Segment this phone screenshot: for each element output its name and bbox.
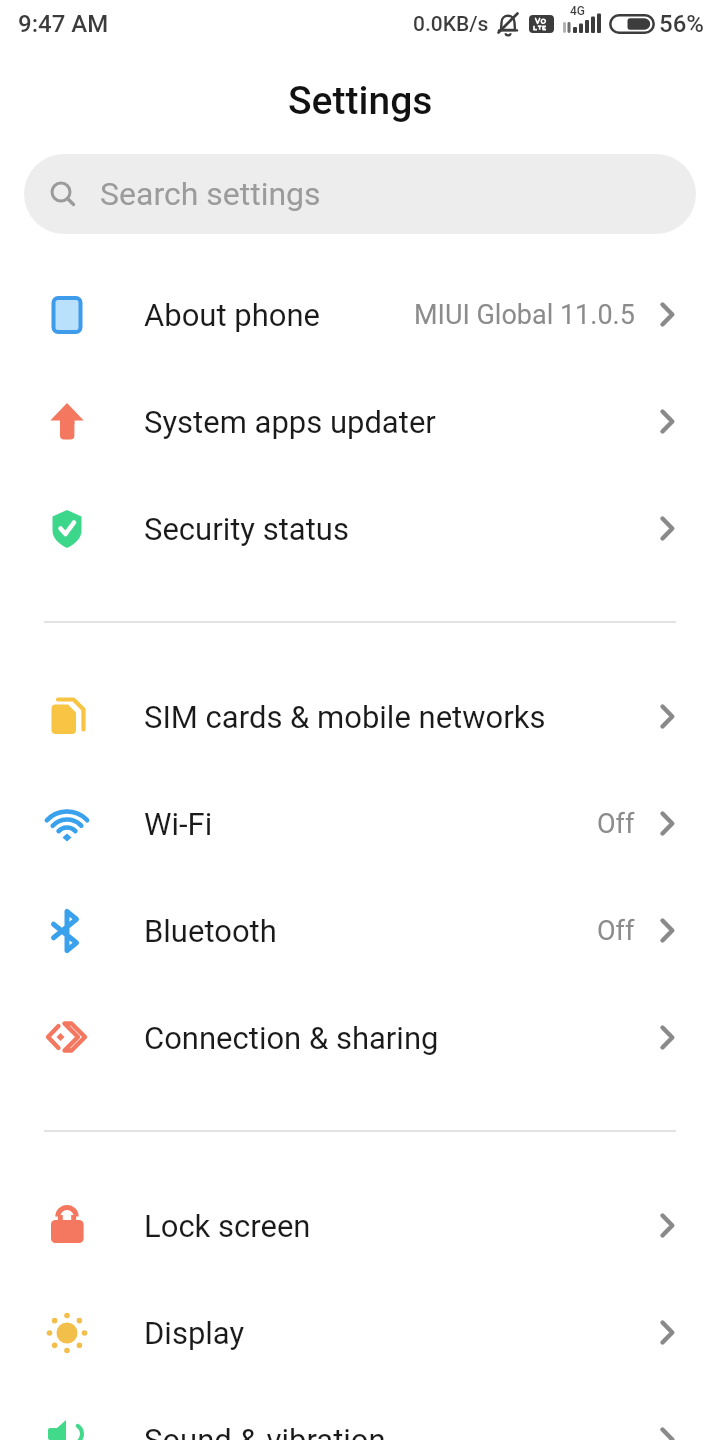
- staticText: 56%: [659, 10, 704, 38]
- staticText: Off: [597, 915, 635, 947]
- staticText: Lock screen: [144, 1208, 311, 1244]
- staticText: 4G: [570, 4, 585, 18]
- staticText: Security status: [144, 511, 349, 547]
- staticText: Bluetooth: [144, 913, 277, 949]
- staticText: Sound & vibration: [144, 1422, 386, 1440]
- staticText: System apps updater: [144, 404, 436, 440]
- button[interactable]: System apps updater: [0, 368, 720, 475]
- button[interactable]: Sound & vibration: [0, 1386, 720, 1440]
- staticText: About phone: [144, 297, 320, 333]
- staticText: Wi-Fi: [144, 806, 213, 842]
- staticText: Settings: [288, 78, 433, 124]
- staticText: MIUI Global 11.0.5: [414, 299, 635, 331]
- staticText: Off: [597, 808, 635, 840]
- button[interactable]: Connection & sharing: [0, 984, 720, 1091]
- staticText: Connection & sharing: [144, 1020, 439, 1056]
- button[interactable]: Display: [0, 1279, 720, 1386]
- staticText: Display: [144, 1315, 245, 1351]
- staticText: SIM cards & mobile networks: [144, 699, 546, 735]
- button[interactable]: Security status: [0, 475, 720, 582]
- button[interactable]: Search settings: [24, 154, 696, 234]
- button[interactable]: Lock screen: [0, 1172, 720, 1279]
- button[interactable]: Wi-Fi: [0, 770, 720, 877]
- button[interactable]: Bluetooth: [0, 877, 720, 984]
- staticText: Search settings: [100, 175, 321, 213]
- staticText: 0.0KB/s: [413, 12, 489, 37]
- button[interactable]: SIM cards & mobile networks: [0, 663, 720, 770]
- staticText: 9:47 AM: [18, 10, 109, 38]
- button[interactable]: About phone: [0, 261, 720, 368]
